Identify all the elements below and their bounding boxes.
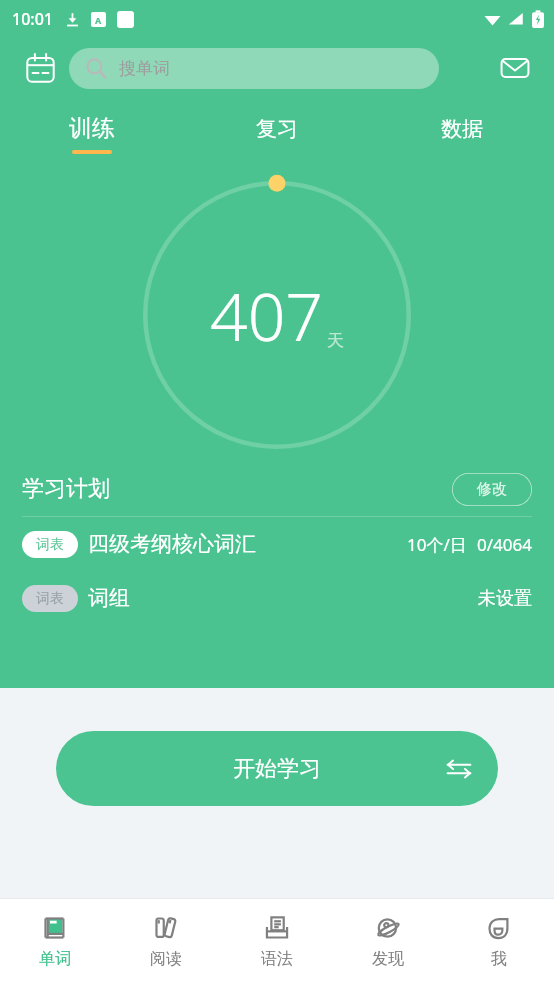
button[interactable]: Messages <box>490 43 540 93</box>
staticText: 发现 <box>372 949 404 969</box>
staticText: 词组 <box>88 585 130 611</box>
button[interactable]: 单词 <box>0 899 110 984</box>
staticText: 复习 <box>256 116 298 142</box>
button[interactable]: Switch word list <box>442 752 476 786</box>
staticText: 0/4064 <box>477 533 532 556</box>
button[interactable]: 数据 <box>369 98 554 170</box>
button[interactable]: 词表 <box>0 517 554 571</box>
staticText: 单词 <box>39 949 71 969</box>
button[interactable]: 发现 <box>332 899 443 984</box>
button[interactable]: 复习 <box>184 98 369 170</box>
staticText: 词表 <box>36 536 64 554</box>
button[interactable]: 训练 <box>0 98 184 170</box>
staticText: 训练 <box>69 114 115 143</box>
button[interactable]: 词表 <box>0 571 554 625</box>
button[interactable]: 阅读 <box>110 899 221 984</box>
staticText: 10个/日 <box>407 533 467 556</box>
staticText: 天 <box>327 330 344 351</box>
button[interactable]: 语法 <box>221 899 332 984</box>
staticText: 未设置 <box>478 587 532 610</box>
staticText: 开始学习 <box>233 755 321 783</box>
button[interactable]: 我 <box>443 899 554 984</box>
button[interactable]: Calendar <box>14 42 66 94</box>
button[interactable]: 搜单词 <box>69 48 439 89</box>
staticText: 我 <box>491 949 507 969</box>
button[interactable]: 开始学习 <box>56 731 498 806</box>
staticText: 学习计划 <box>22 475 110 503</box>
staticText: 搜单词 <box>119 58 170 79</box>
staticText: 数据 <box>441 116 483 142</box>
staticText: A <box>95 14 102 26</box>
button[interactable]: 修改 <box>452 473 532 506</box>
staticText: 语法 <box>261 949 293 969</box>
staticText: 10:01 <box>12 8 53 30</box>
staticText: 词表 <box>36 590 64 608</box>
staticText: 四级考纲核心词汇 <box>88 531 256 557</box>
staticText: 阅读 <box>150 949 182 969</box>
staticText: 修改 <box>477 480 507 499</box>
staticText: 407 <box>210 270 324 360</box>
